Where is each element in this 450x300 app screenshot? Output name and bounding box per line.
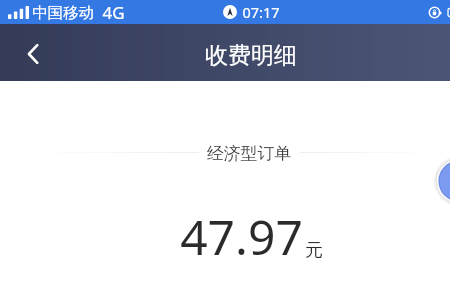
staticText: 47.97	[180, 204, 303, 269]
staticText: 07:17	[242, 2, 280, 22]
staticText: 元	[305, 239, 323, 262]
staticText: 4G	[102, 1, 125, 24]
staticText: 收费明细	[205, 41, 297, 70]
staticText: 经济型订单	[207, 143, 291, 164]
staticText: 中国移动	[32, 3, 94, 22]
button[interactable]: Customer service	[433, 155, 450, 207]
button[interactable]: Back	[10, 32, 54, 76]
